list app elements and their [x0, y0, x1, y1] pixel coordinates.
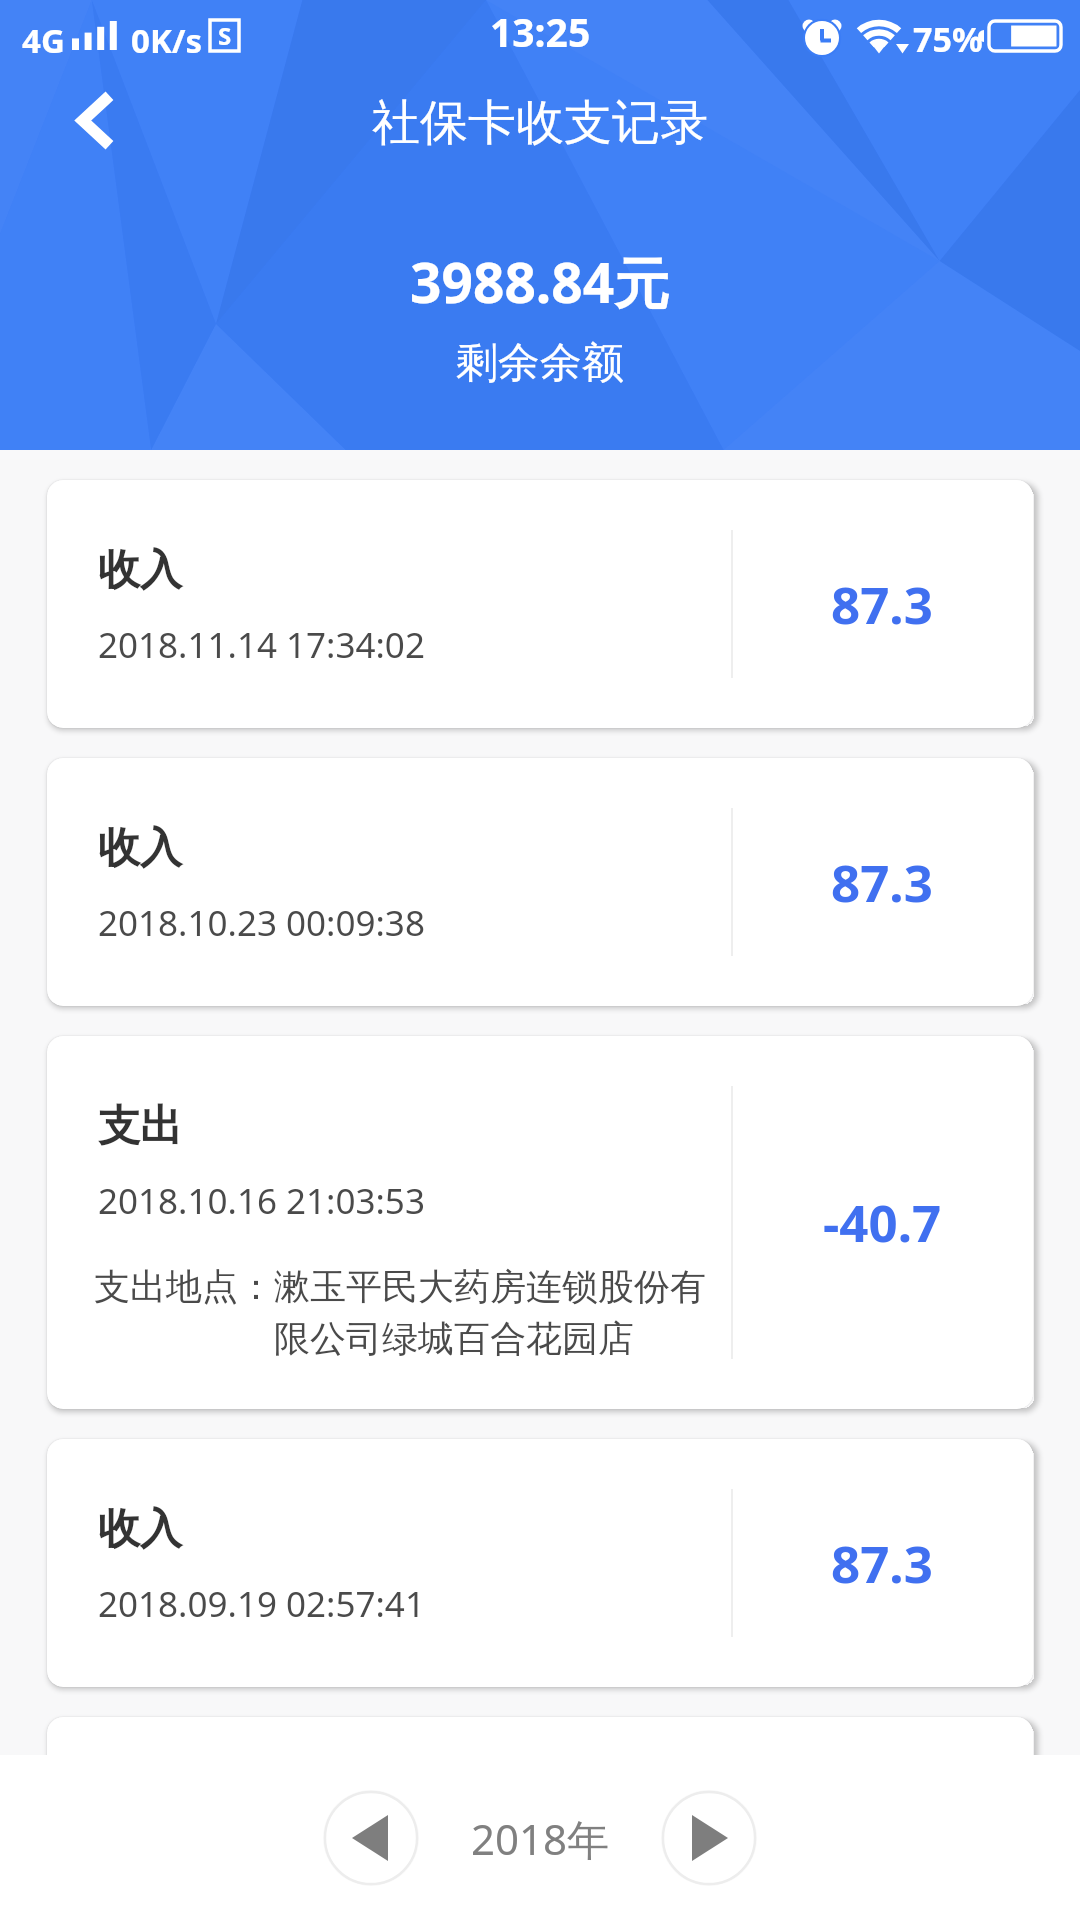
button[interactable]: Next year: [661, 1790, 757, 1886]
staticText: 支出: [98, 1100, 182, 1153]
staticText: 2018.11.14 17:34:02: [98, 621, 425, 669]
button[interactable]: 支出: [47, 1036, 1033, 1409]
staticText: 剩余余额: [456, 337, 624, 390]
button[interactable]: Previous year: [323, 1790, 419, 1886]
button[interactable]: 收入: [47, 758, 1033, 1006]
staticText: 收入: [98, 822, 182, 875]
staticText: 2018.10.16 21:03:53: [98, 1177, 425, 1225]
staticText: 支出地点：: [94, 1264, 274, 1309]
staticText: 2018.10.23 00:09:38: [98, 899, 425, 947]
staticText: 社保卡收支记录: [0, 93, 1080, 153]
staticText: 87.3: [831, 1528, 933, 1597]
staticText: 3988.84元: [410, 244, 670, 319]
button[interactable]: 收入: [47, 1439, 1033, 1687]
staticText: 4G: [22, 18, 65, 63]
staticText: -40.7: [823, 1187, 942, 1256]
button[interactable]: 收入: [47, 480, 1033, 728]
staticText: 0K/s: [131, 18, 203, 63]
staticText: 收入: [98, 1503, 182, 1556]
staticText: 87.3: [831, 847, 933, 916]
staticText: S: [218, 19, 232, 50]
staticText: 13:25: [490, 5, 591, 58]
staticText: 2018.09.19 02:57:41: [98, 1580, 425, 1628]
button[interactable]: Back: [39, 65, 149, 175]
staticText: 75%: [913, 16, 983, 62]
staticText: 2018年: [455, 1810, 625, 1867]
staticText: 87.3: [831, 569, 933, 638]
staticText: 漱玉平民大药房连锁股份有限公司绿城百合花园店: [274, 1264, 710, 1362]
staticText: 收入: [98, 544, 182, 597]
